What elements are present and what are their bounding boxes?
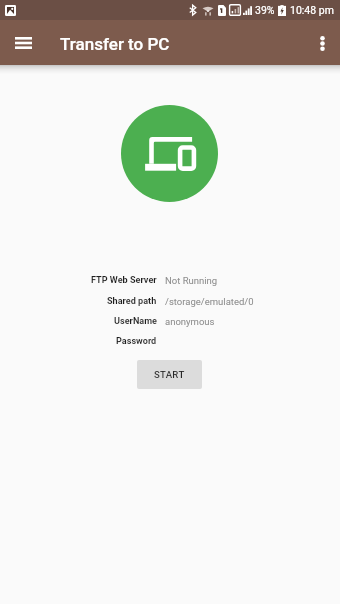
staticText: UserName: [114, 316, 157, 327]
staticText: 10:48 pm: [290, 4, 334, 16]
staticText: Not Running: [165, 275, 218, 286]
button[interactable]: START: [137, 360, 202, 389]
staticText: FTP Web Server: [91, 275, 157, 286]
staticText: anonymous: [165, 316, 215, 327]
staticText: /storage/emulated/0: [165, 296, 254, 307]
button[interactable]: More options: [306, 23, 338, 63]
staticText: Shared path: [107, 296, 157, 307]
staticText: 39%: [255, 4, 275, 16]
staticText: START: [154, 369, 185, 380]
button[interactable]: Devices: [121, 105, 218, 202]
staticText: Transfer to PC: [60, 34, 170, 54]
staticText: Password: [116, 336, 157, 347]
button[interactable]: Open navigation drawer: [6, 23, 40, 63]
